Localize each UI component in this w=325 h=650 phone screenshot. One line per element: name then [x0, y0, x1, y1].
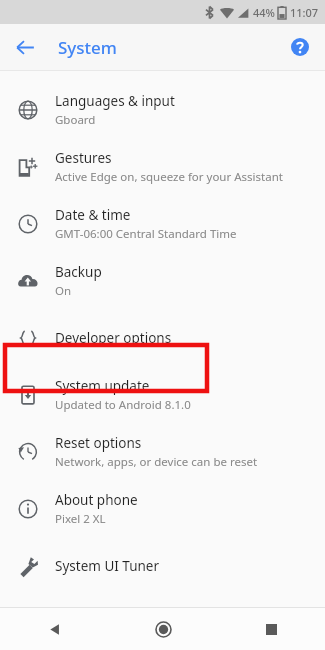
button[interactable]: Languages & input — [0, 81, 325, 138]
staticText: 44% — [253, 5, 275, 20]
staticText: Updated to Android 8.1.0 — [55, 397, 191, 413]
staticText: Reset options — [55, 434, 142, 452]
staticText: Network, apps, or device can be reset — [55, 454, 258, 470]
staticText: Date & time — [55, 206, 131, 224]
staticText: Pixel 2 XL — [55, 511, 106, 527]
staticText: GMT-06:00 Central Standard Time — [55, 226, 237, 242]
staticText: On — [55, 283, 72, 299]
staticText: System update — [55, 377, 150, 395]
staticText: System UI Tuner — [55, 557, 160, 575]
button[interactable]: Backup — [0, 252, 325, 309]
staticText: Active Edge on, squeeze for your Assista… — [55, 169, 283, 185]
button[interactable]: Developer options — [0, 309, 325, 366]
staticText: Gestures — [55, 149, 112, 167]
staticText: About phone — [55, 491, 138, 509]
button[interactable]: Gestures — [0, 138, 325, 195]
button[interactable]: Home — [109, 608, 217, 650]
staticText: Gboard — [55, 112, 96, 128]
button[interactable]: Back — [6, 28, 44, 66]
button[interactable]: Date & time — [0, 195, 325, 252]
staticText: Backup — [55, 263, 102, 281]
button[interactable]: About phone — [0, 480, 325, 537]
button[interactable]: System UI Tuner — [0, 537, 325, 594]
button[interactable]: Back — [0, 608, 109, 650]
staticText: Developer options — [55, 329, 172, 347]
staticText: System — [58, 36, 117, 59]
staticText: Languages & input — [55, 92, 175, 110]
button[interactable]: System update — [0, 366, 325, 423]
staticText: 11:07 — [290, 5, 319, 20]
button[interactable]: Recent apps — [217, 608, 325, 650]
button[interactable]: Reset options — [0, 423, 325, 480]
button[interactable]: Help — [283, 30, 317, 64]
